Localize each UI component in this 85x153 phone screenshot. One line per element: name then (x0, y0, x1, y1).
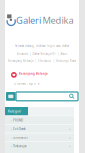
staticText: 0 item(s) - Rp 0 ▾ (14, 82, 39, 85)
staticText: - Tensimeter (11, 136, 28, 139)
staticText: Galeri (16, 14, 41, 26)
staticText: + (69, 144, 71, 148)
staticText: Keranjang Belanja | Checkout | Hubungi K… (8, 59, 76, 63)
staticText: - PROMO (11, 119, 23, 122)
button[interactable]: - PROMO (5, 116, 74, 124)
staticText: Medika (42, 14, 73, 26)
staticText: Selamat datang, silahkan login atau daft… (15, 44, 69, 48)
button[interactable]: - Timbangan (5, 141, 74, 150)
staticText: Beranda | Daftar Belanja (0) | Akun (16, 52, 67, 56)
staticText: - Timbangan (11, 144, 27, 148)
staticText: + (69, 136, 71, 139)
button[interactable]: Cari produk (16, 92, 78, 101)
staticText: Kategori (8, 110, 21, 113)
button[interactable]: - Cek Darah (5, 124, 74, 133)
staticText: - Cek Darah (11, 127, 26, 131)
staticText: Keranjang Belanja (19, 72, 48, 75)
staticText: + (69, 127, 71, 131)
button[interactable]: Pilih kategori (6, 92, 16, 101)
button[interactable]: Kategori (5, 107, 28, 116)
button[interactable]: - Tensimeter (5, 133, 74, 141)
